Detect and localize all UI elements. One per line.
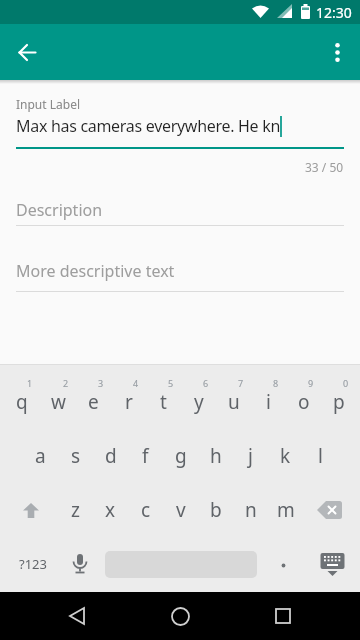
staticText: f: [142, 443, 149, 469]
staticText: o: [298, 389, 310, 415]
button[interactable]: t: [146, 375, 181, 429]
staticText: 3: [98, 377, 104, 389]
staticText: 0: [343, 377, 349, 389]
button[interactable]: u: [216, 375, 251, 429]
staticText: m: [277, 497, 295, 523]
button[interactable]: w: [40, 375, 76, 429]
button[interactable]: e: [76, 375, 111, 429]
button[interactable]: q: [4, 375, 40, 429]
button[interactable]: [4, 483, 57, 537]
staticText: e: [88, 389, 99, 415]
staticText: v: [176, 497, 186, 523]
staticText: j: [248, 443, 253, 469]
button[interactable]: s: [58, 429, 93, 483]
staticText: c: [141, 497, 151, 523]
staticText: n: [245, 497, 257, 523]
button[interactable]: Max has cameras everywhere. He kn: [16, 115, 282, 137]
button[interactable]: i: [251, 375, 286, 429]
button[interactable]: [105, 537, 257, 591]
button[interactable]: v: [163, 483, 198, 537]
button[interactable]: x: [93, 483, 128, 537]
button[interactable]: h: [198, 429, 233, 483]
button[interactable]: m: [268, 483, 303, 537]
button[interactable]: [303, 483, 356, 537]
staticText: d: [105, 443, 117, 469]
staticText: z: [71, 497, 80, 523]
staticText: g: [175, 443, 187, 469]
staticText: u: [228, 389, 240, 415]
staticText: ?123: [19, 555, 47, 573]
staticText: 7: [238, 377, 244, 389]
button[interactable]: [145, 592, 215, 640]
button[interactable]: o: [286, 375, 321, 429]
staticText: w: [51, 389, 66, 415]
staticText: b: [210, 497, 222, 523]
staticText: y: [194, 389, 204, 415]
staticText: p: [333, 389, 345, 415]
button[interactable]: j: [233, 429, 268, 483]
button[interactable]: n: [233, 483, 268, 537]
staticText: q: [16, 389, 28, 415]
button[interactable]: [11, 36, 43, 68]
staticText: i: [266, 389, 271, 415]
staticText: 12:30: [316, 3, 352, 22]
button[interactable]: [309, 537, 356, 591]
staticText: 33 / 50: [305, 159, 344, 175]
button[interactable]: b: [198, 483, 233, 537]
staticText: Max has cameras everywhere. He kn: [16, 115, 280, 137]
staticText: 8: [273, 377, 279, 389]
staticText: l: [318, 443, 323, 469]
staticText: s: [71, 443, 81, 469]
staticText: h: [210, 443, 222, 469]
button[interactable]: g: [163, 429, 198, 483]
button[interactable]: More descriptive text: [16, 260, 175, 282]
staticText: k: [280, 443, 291, 469]
staticText: Input Label: [16, 96, 80, 112]
button[interactable]: c: [128, 483, 163, 537]
button[interactable]: d: [93, 429, 128, 483]
button[interactable]: a: [22, 429, 58, 483]
button[interactable]: Description: [16, 199, 103, 221]
staticText: 1: [27, 377, 33, 389]
staticText: 2: [63, 377, 69, 389]
staticText: t: [160, 389, 167, 415]
button[interactable]: [61, 537, 99, 591]
button[interactable]: p: [321, 375, 356, 429]
button[interactable]: [42, 592, 112, 640]
staticText: 9: [308, 377, 314, 389]
staticText: 5: [168, 377, 174, 389]
button[interactable]: k: [268, 429, 303, 483]
staticText: 4: [133, 377, 139, 389]
button[interactable]: [322, 37, 352, 67]
button[interactable]: y: [181, 375, 216, 429]
button[interactable]: r: [111, 375, 146, 429]
button[interactable]: f: [128, 429, 163, 483]
button[interactable]: ?123: [4, 537, 61, 591]
staticText: r: [125, 389, 133, 415]
button[interactable]: l: [303, 429, 338, 483]
button[interactable]: [248, 592, 318, 640]
button[interactable]: z: [57, 483, 93, 537]
staticText: a: [35, 443, 46, 469]
staticText: 6: [203, 377, 209, 389]
button[interactable]: [257, 537, 309, 591]
staticText: x: [105, 497, 116, 523]
